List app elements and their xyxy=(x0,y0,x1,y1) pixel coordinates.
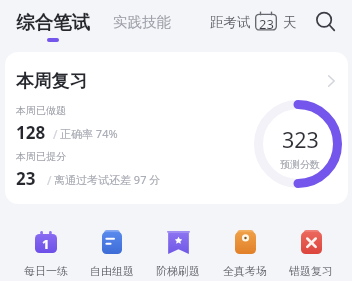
button[interactable]: 阶梯刷题 xyxy=(148,221,208,281)
staticText: 23 xyxy=(259,15,274,33)
staticText: 每日一练 xyxy=(24,264,68,278)
button[interactable]: 自由组题 xyxy=(82,221,142,281)
button[interactable]: 全真考场 xyxy=(215,221,275,281)
button[interactable]: 错题复习 xyxy=(281,221,341,281)
button[interactable]: 实践技能 xyxy=(113,13,171,31)
staticText: 错题复习 xyxy=(289,264,333,278)
staticText: 323 xyxy=(282,125,319,154)
staticText: 正确率 74% xyxy=(60,126,118,141)
button[interactable]: 本周复习 xyxy=(5,52,348,204)
staticText: 自由组题 xyxy=(90,264,134,278)
staticText: 23 xyxy=(16,167,36,190)
staticText: / xyxy=(47,172,52,188)
staticText: 128 xyxy=(16,121,46,144)
button[interactable]: 距考试 xyxy=(205,6,300,38)
staticText: 本周已提分 xyxy=(16,150,66,163)
button[interactable]: Search xyxy=(310,6,338,34)
staticText: 1 xyxy=(42,235,50,253)
staticText: 本周已做题 xyxy=(16,104,66,117)
staticText: 综合笔试 xyxy=(16,11,90,34)
button[interactable]: 综合笔试 xyxy=(14,8,92,46)
staticText: 全真考场 xyxy=(223,264,267,278)
staticText: 阶梯刷题 xyxy=(156,264,200,278)
staticText: 预测分数 xyxy=(280,158,320,171)
button[interactable]: More xyxy=(320,69,344,93)
staticText: / xyxy=(53,126,58,142)
staticText: 本周复习 xyxy=(16,70,88,92)
staticText: 离通过考试还差 97 分 xyxy=(54,172,161,187)
button[interactable]: 1 xyxy=(16,221,76,281)
staticText: 距考试 xyxy=(210,14,251,31)
staticText: 天 xyxy=(283,14,297,31)
